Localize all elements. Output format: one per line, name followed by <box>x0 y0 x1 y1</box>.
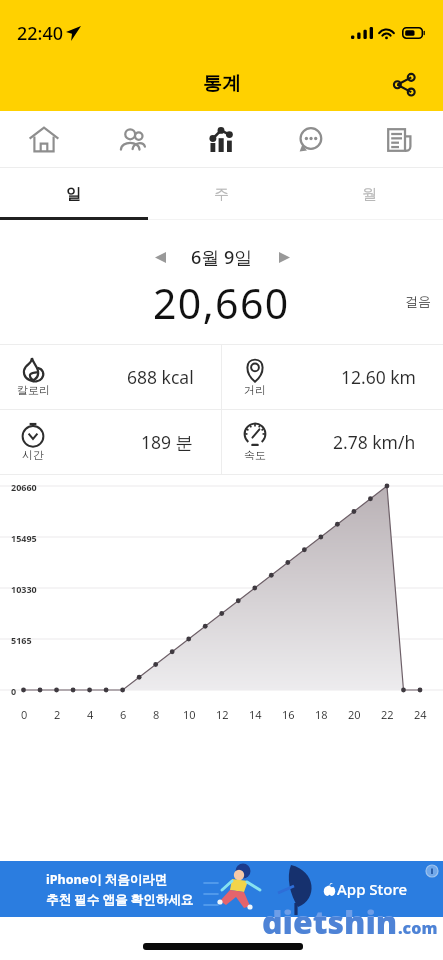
staticText: 추천 필수 앱을 확인하세요 <box>46 891 194 908</box>
button[interactable]: Ad info <box>425 864 439 878</box>
button[interactable]: Home <box>0 111 88 168</box>
staticText: 10 <box>183 707 196 722</box>
button[interactable]: Statistics <box>176 111 265 168</box>
button[interactable]: 월 <box>295 168 443 220</box>
staticText: 189 분 <box>141 430 194 454</box>
staticText: 거리 <box>244 383 266 397</box>
staticText: 6월 9일 <box>191 245 253 270</box>
staticText: 월 <box>362 185 377 204</box>
button[interactable]: 시간 <box>0 410 221 474</box>
staticText: 22 <box>381 707 394 722</box>
staticText: 걸음 <box>405 293 431 309</box>
button[interactable]: Previous day <box>143 240 177 274</box>
staticText: 20,660 <box>153 275 290 325</box>
button[interactable]: 속도 <box>222 410 443 474</box>
staticText: 칼로리 <box>17 383 50 397</box>
staticText: 0 <box>11 685 17 697</box>
button[interactable]: 거리 <box>222 345 443 409</box>
button[interactable]: News <box>354 111 443 168</box>
staticText: 2.78 km/h <box>333 430 416 454</box>
staticText: 0 <box>21 707 28 722</box>
staticText: 2 <box>54 707 61 722</box>
staticText: 12.60 km <box>341 365 416 389</box>
staticText: 8 <box>153 707 160 722</box>
staticText: 5165 <box>11 634 32 646</box>
staticText: 통계 <box>203 72 241 96</box>
staticText: App Store <box>337 879 408 899</box>
button[interactable]: 칼로리 <box>0 345 221 409</box>
staticText: 6 <box>120 707 127 722</box>
staticText: 24 <box>414 707 427 722</box>
button[interactable]: 주 <box>147 168 295 220</box>
staticText: 12 <box>216 707 229 722</box>
staticText: 일 <box>66 185 81 204</box>
staticText: 4 <box>87 707 94 722</box>
staticText: 22:40 <box>17 21 64 46</box>
button[interactable]: Friends <box>88 111 176 168</box>
staticText: 14 <box>249 707 262 722</box>
staticText: 15495 <box>11 532 37 544</box>
staticText: 688 kcal <box>127 365 194 389</box>
button[interactable]: Next day <box>267 240 301 274</box>
staticText: 속도 <box>244 448 266 462</box>
staticText: 20 <box>348 707 361 722</box>
staticText: 시간 <box>22 448 44 462</box>
button[interactable]: Chat <box>265 111 354 168</box>
staticText: 18 <box>315 707 328 722</box>
staticText: 10330 <box>11 583 37 595</box>
staticText: 주 <box>214 185 229 204</box>
staticText: iPhone이 처음이라면 <box>46 871 168 888</box>
button[interactable]: 일 <box>0 168 147 220</box>
button[interactable]: Share <box>384 64 424 104</box>
staticText: 16 <box>282 707 295 722</box>
button[interactable]: iPhone이 처음이라면 <box>0 861 443 917</box>
staticText: 20660 <box>11 481 37 493</box>
